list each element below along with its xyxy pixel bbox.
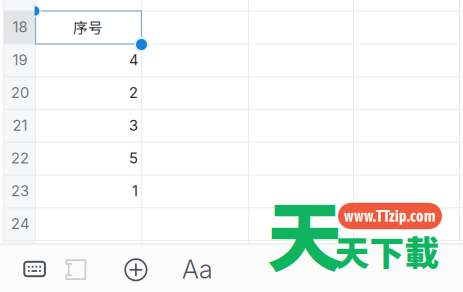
staticText: 19	[12, 51, 27, 69]
staticText: 1	[132, 182, 138, 200]
staticText: 序号	[73, 16, 103, 38]
staticText: 18	[12, 18, 27, 36]
button[interactable]: Keyboard	[13, 245, 57, 292]
staticText: 2	[129, 84, 138, 101]
staticText: 21	[12, 116, 27, 134]
staticText: 4	[129, 51, 138, 69]
button[interactable]: Format text	[173, 245, 221, 292]
staticText: 天下載	[334, 226, 439, 276]
staticText: 天	[267, 177, 343, 287]
staticText: 3	[129, 116, 138, 134]
staticText: 22	[11, 149, 29, 167]
staticText: www.TTzip.com	[344, 207, 436, 225]
button[interactable]: Cell contents	[54, 246, 98, 292]
staticText: 5	[129, 149, 138, 167]
staticText: Aa	[182, 254, 213, 285]
staticText: 20	[11, 84, 29, 101]
staticText: 24	[11, 215, 29, 232]
button[interactable]: Insert	[112, 246, 160, 292]
staticText: 23	[11, 182, 29, 200]
